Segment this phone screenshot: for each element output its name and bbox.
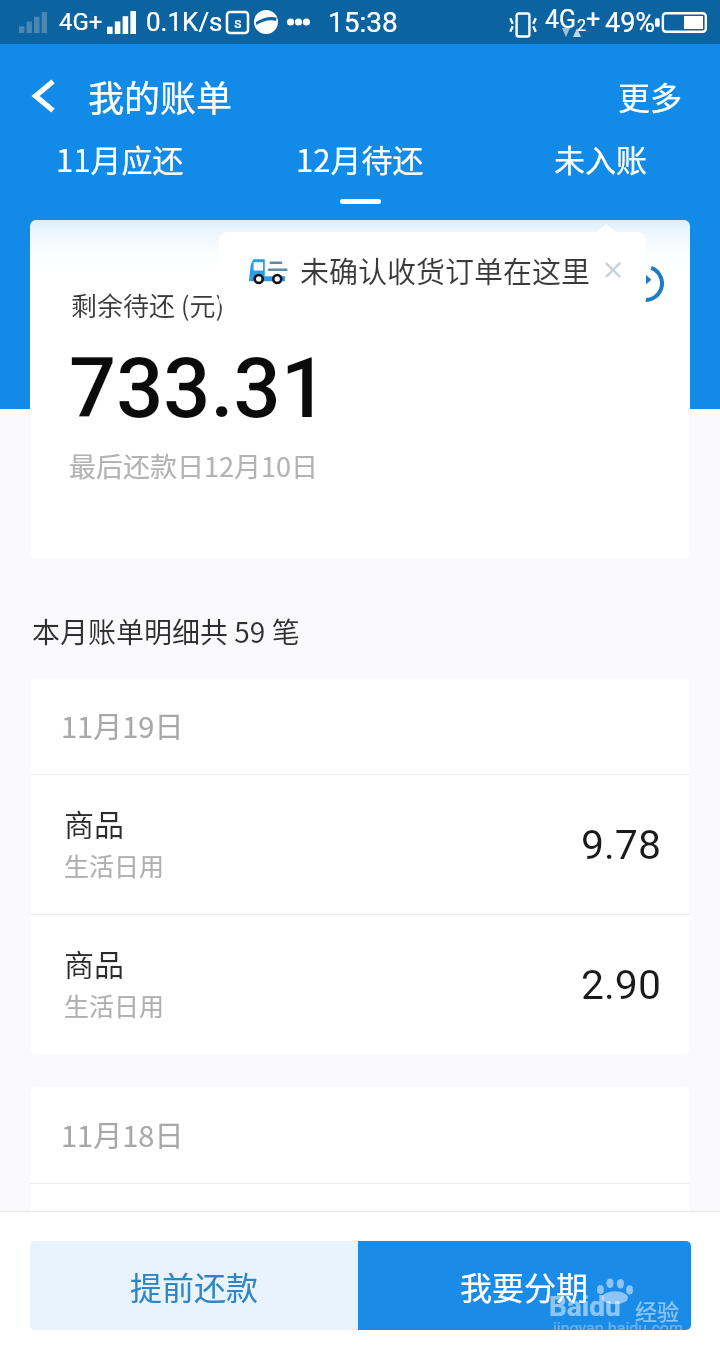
staticText: 我要分期 <box>460 1263 589 1309</box>
staticText: 我的账单 <box>88 70 233 122</box>
button[interactable]: Back <box>14 66 74 126</box>
staticText: 9.78 <box>581 821 661 869</box>
staticText: 2.90 <box>581 961 661 1009</box>
staticText: 生活日用 <box>64 987 165 1023</box>
button[interactable]: 未入账 <box>480 124 720 214</box>
button[interactable]: 更多 <box>592 48 720 143</box>
button[interactable]: 提前还款 <box>30 1241 358 1330</box>
staticText: 更多 <box>618 73 683 119</box>
staticText: 12月待还 <box>296 136 424 181</box>
button[interactable]: 11月18日 <box>30 1087 690 1183</box>
staticText: 49% <box>605 7 656 39</box>
button[interactable]: Refresh <box>627 265 664 302</box>
staticText: 0.1K/s <box>146 7 223 37</box>
staticText: 未入账 <box>554 136 647 181</box>
staticText: 11月19日 <box>61 704 184 746</box>
button[interactable]: 商品 <box>30 915 690 1054</box>
staticText: 11月应还 <box>56 136 184 181</box>
button[interactable]: 11月19日 <box>30 678 690 774</box>
staticText: 未确认收货订单在这里 <box>300 249 591 291</box>
staticText: jingyan.baidu.com <box>553 1319 683 1338</box>
button[interactable]: 商品 <box>30 775 690 914</box>
button[interactable]: 11月应还 <box>0 124 240 214</box>
staticText: 11月18日 <box>61 1113 184 1155</box>
button[interactable]: 12月待还 <box>240 124 480 214</box>
staticText: s <box>234 14 242 32</box>
staticText: 2 <box>577 16 586 35</box>
staticText: 4G <box>545 5 577 34</box>
button[interactable]: Close <box>591 248 635 292</box>
staticText: 生活日用 <box>64 847 165 883</box>
staticText: 商品 <box>64 801 124 844</box>
staticText: 本月账单明细共 59 笔 <box>32 611 300 652</box>
staticText: + <box>586 5 601 34</box>
staticText: 4G+ <box>59 8 103 36</box>
button[interactable]: 我要分期 <box>358 1241 691 1330</box>
staticText: 剩余待还 (元) <box>71 286 225 324</box>
staticText: Baidu <box>549 1290 621 1323</box>
staticText: 商品 <box>64 941 124 984</box>
staticText: 提前还款 <box>130 1263 259 1309</box>
staticText: 最后还款日12月10日 <box>69 446 318 485</box>
staticText: 15:38 <box>328 6 398 39</box>
staticText: 经验 <box>635 1294 680 1326</box>
staticText: 733.31 <box>69 340 328 437</box>
